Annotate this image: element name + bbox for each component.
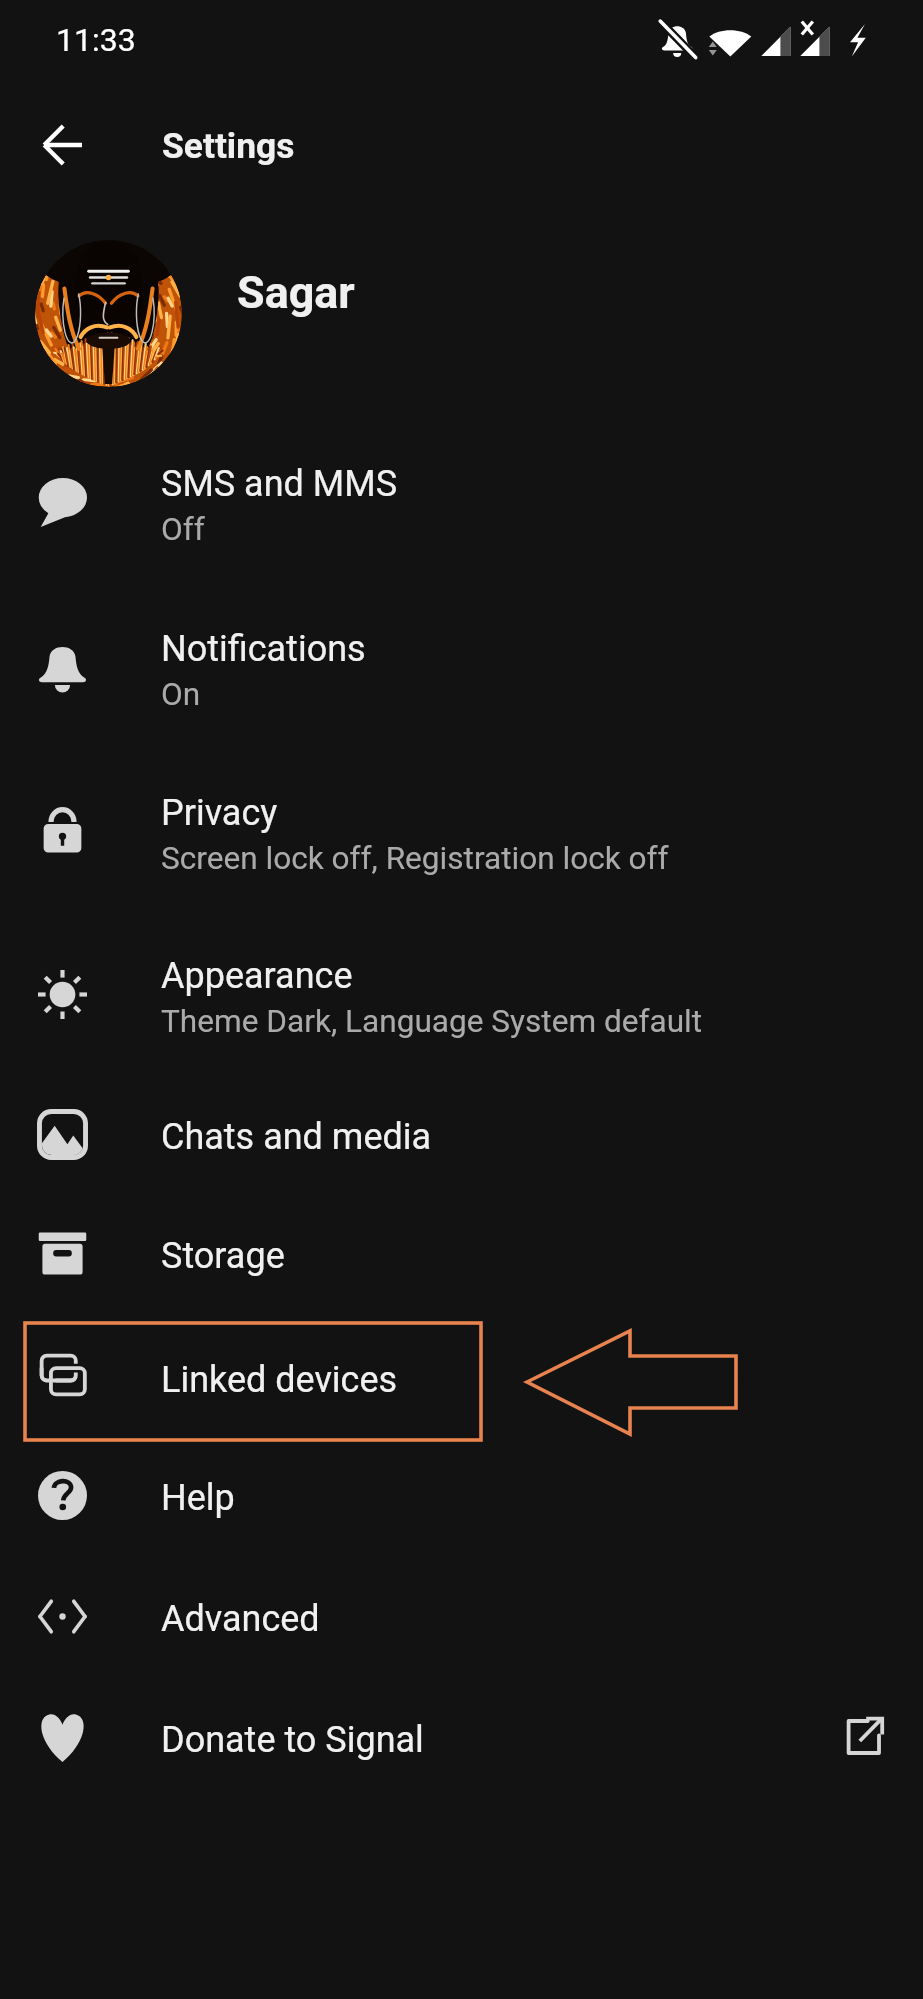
button[interactable]: Chats and media — [0, 1075, 923, 1193]
staticText: Privacy — [161, 792, 278, 834]
staticText: 11:33 — [56, 21, 136, 59]
staticText: Storage — [161, 1235, 285, 1277]
button[interactable]: Privacy — [0, 751, 923, 911]
staticText: Sagar — [237, 266, 355, 319]
staticText: On — [161, 676, 201, 713]
button[interactable]: Sagar — [0, 232, 923, 394]
staticText: Off — [161, 511, 205, 548]
staticText: Notifications — [161, 628, 366, 670]
staticText: Advanced — [161, 1598, 320, 1640]
button[interactable]: Open in browser — [803, 1677, 923, 1797]
button[interactable]: SMS and MMS — [0, 422, 923, 582]
staticText: Donate to Signal — [161, 1719, 424, 1761]
staticText: Settings — [162, 125, 295, 166]
button[interactable]: Help — [0, 1436, 923, 1554]
staticText: Chats and media — [161, 1116, 432, 1158]
staticText: Screen lock off, Registration lock off — [161, 840, 669, 877]
staticText: Theme Dark, Language System default — [161, 1003, 703, 1040]
button[interactable]: Appearance — [0, 925, 923, 1063]
button[interactable]: Linked devices — [0, 1318, 923, 1436]
button[interactable]: Advanced — [0, 1556, 923, 1676]
staticText: SMS and MMS — [161, 463, 398, 505]
button[interactable]: Storage — [0, 1194, 923, 1312]
staticText: Help — [161, 1477, 235, 1519]
button[interactable]: Donate to Signal — [0, 1677, 923, 1797]
staticText: Linked devices — [161, 1359, 398, 1401]
staticText: Appearance — [161, 955, 353, 997]
button[interactable]: Notifications — [0, 587, 923, 747]
button[interactable]: Back — [18, 101, 106, 189]
